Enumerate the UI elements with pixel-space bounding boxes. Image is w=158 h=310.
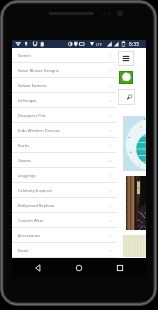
button[interactable]: Indo Western Dresses xyxy=(12,123,116,138)
button[interactable]: Salwar Kameez xyxy=(12,78,116,93)
staticText: Custom Wear xyxy=(18,218,44,224)
button[interactable]: Custom Wear xyxy=(12,213,116,228)
staticText: Designers Pick xyxy=(18,113,46,119)
staticText: Leggings xyxy=(18,173,36,179)
staticText: 6:33 xyxy=(129,41,139,48)
button[interactable]: Recent apps xyxy=(105,258,135,277)
staticText: Deals xyxy=(18,248,29,254)
button[interactable]: Gowns xyxy=(12,153,116,168)
staticText: Celebrity Inspired xyxy=(18,188,52,194)
staticText: Saree Blouse Designs xyxy=(18,68,59,74)
button[interactable]: Menu xyxy=(118,51,134,66)
staticText: Accessories xyxy=(18,233,41,239)
button[interactable]: Lehengas xyxy=(12,93,116,108)
button[interactable]: Deals xyxy=(12,243,116,258)
button[interactable]: Leggings xyxy=(12,168,116,183)
staticText: Indo Western Dresses xyxy=(18,128,60,134)
button[interactable]: Chat on WhatsApp xyxy=(119,71,133,84)
button[interactable]: Search xyxy=(118,89,135,105)
button[interactable]: Celebrity Inspired xyxy=(12,183,116,198)
button[interactable]: Home xyxy=(64,258,94,277)
staticText: Lehengas xyxy=(18,98,37,104)
button[interactable]: Saree Blouse Designs xyxy=(12,63,116,78)
button[interactable]: Designers Pick xyxy=(12,108,116,123)
button[interactable]: Bollywood Replicas xyxy=(12,198,116,213)
staticText: LTE xyxy=(96,42,102,47)
staticText: Salwar Kameez xyxy=(18,83,47,89)
button[interactable]: Sarees xyxy=(12,48,116,63)
button[interactable]: Accessories xyxy=(12,228,116,243)
staticText: Kurtis xyxy=(18,143,30,149)
staticText: Bollywood Replicas xyxy=(18,203,55,209)
staticText: Sarees xyxy=(18,53,31,59)
button[interactable]: Back xyxy=(23,258,53,277)
staticText: Gowns xyxy=(18,158,31,164)
button[interactable]: Kurtis xyxy=(12,138,116,153)
